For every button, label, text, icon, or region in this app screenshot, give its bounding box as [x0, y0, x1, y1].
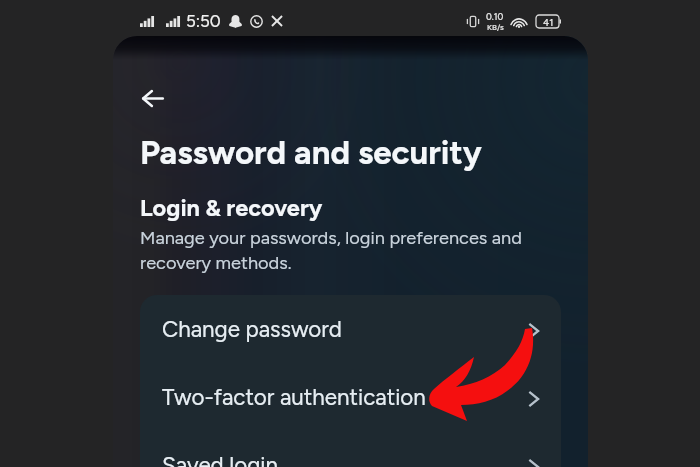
- button[interactable]: Back: [132, 77, 174, 119]
- staticText: Two-factor authentication: [162, 384, 426, 411]
- staticText: 41: [543, 16, 554, 28]
- button[interactable]: Two-factor authentication: [140, 363, 561, 431]
- button[interactable]: Saved login: [140, 431, 561, 467]
- button[interactable]: Change password: [140, 295, 561, 363]
- staticText: 5:50: [186, 11, 221, 31]
- staticText: KB/s: [487, 22, 504, 32]
- staticText: 0.10: [486, 11, 504, 22]
- staticText: Manage your passwords, login preferences…: [140, 227, 522, 273]
- staticText: Saved login: [162, 452, 279, 467]
- staticText: Password and security: [140, 133, 482, 173]
- staticText: Login & recovery: [140, 194, 323, 222]
- staticText: Change password: [162, 316, 342, 343]
